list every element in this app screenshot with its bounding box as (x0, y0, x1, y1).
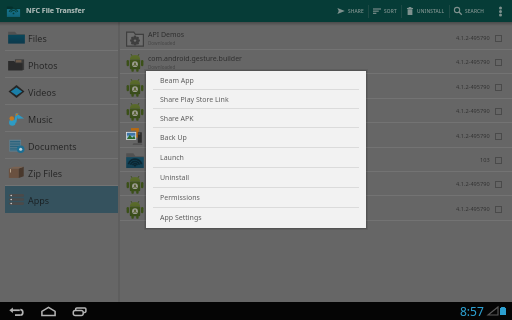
button[interactable]: Apps (5, 186, 118, 213)
staticText: Share Play Store Link (160, 95, 229, 105)
button[interactable]: Files (5, 24, 118, 51)
button[interactable]: Share Play Store Link (146, 90, 366, 109)
staticText: 4.1.2-495790 (456, 107, 490, 115)
staticText: Documents (28, 140, 77, 152)
staticText: SORT (384, 8, 397, 15)
button[interactable]: More options (494, 0, 506, 22)
staticText: Downloaded (148, 89, 176, 95)
staticText: Downloaded (148, 186, 176, 192)
button[interactable]: com.android.gesture.builder (120, 50, 512, 74)
staticText: Downloaded (148, 64, 176, 70)
staticText: 4.1.2-495790 (456, 132, 490, 140)
staticText: Zip Files (28, 167, 63, 179)
button[interactable]: App Settings (146, 208, 366, 228)
staticText: Downloaded (148, 113, 176, 119)
button[interactable]: Zip Files (5, 159, 118, 186)
staticText: 8:57 (460, 303, 484, 319)
staticText: Videos (28, 86, 57, 98)
button[interactable]: SORT (369, 0, 401, 22)
button[interactable]: Widget Preview (120, 197, 512, 221)
button[interactable]: Home (36, 302, 61, 320)
button[interactable]: Share APK (146, 109, 366, 128)
button[interactable]: SEARCH (450, 0, 489, 22)
button[interactable]: Permissions (146, 188, 366, 208)
staticText: API Demos (148, 30, 185, 40)
staticText: Downloaded (148, 162, 176, 168)
button[interactable]: Launch (146, 148, 366, 168)
staticText: 4.1.2-495790 (456, 180, 490, 188)
button[interactable]: Photos (5, 51, 118, 78)
staticText: Uninstall (160, 173, 189, 183)
staticText: SEARCH (465, 8, 485, 15)
staticText: Share APK (160, 114, 194, 124)
button[interactable]: UNINSTALL (402, 0, 449, 22)
button[interactable]: Videos (5, 78, 118, 105)
staticText: Beam App (160, 76, 194, 86)
staticText: 4.1.2-495790 (456, 205, 490, 213)
staticText: Permissions (160, 193, 200, 203)
staticText: Speech Recorder (148, 176, 204, 186)
staticText: App Settings (160, 213, 202, 223)
staticText: Downloaded (148, 40, 176, 46)
button[interactable]: Speech Recorder (120, 172, 512, 196)
button[interactable]: Back Up (146, 128, 366, 148)
staticText: com.android.gesture.builder (148, 54, 242, 64)
button[interactable]: NFC File Transfer (120, 148, 512, 172)
button[interactable]: Back (4, 302, 29, 320)
staticText: Gallery (148, 128, 172, 138)
staticText: 103 (480, 156, 490, 164)
staticText: Photos (28, 59, 58, 71)
staticText: Widget Preview (148, 201, 199, 211)
staticText: Downloaded (148, 138, 176, 144)
button[interactable]: SHARE (333, 0, 368, 22)
button[interactable]: Documents (5, 132, 118, 159)
staticText: NFC File Transfer (26, 6, 85, 16)
staticText: Downloaded (148, 211, 176, 217)
button[interactable]: Dev Tools (120, 99, 512, 123)
staticText: 4.1.2-495790 (456, 34, 490, 42)
button[interactable]: Beam App (146, 71, 366, 90)
button[interactable]: Uninstall (146, 168, 366, 188)
staticText: UNINSTALL (417, 8, 445, 15)
staticText: SHARE (348, 8, 364, 15)
staticText: Back Up (160, 133, 187, 143)
button[interactable]: Custom Locale (120, 75, 512, 99)
staticText: Files (28, 32, 47, 44)
staticText: 4.1.2-495790 (456, 58, 490, 66)
staticText: 4.1.2-495790 (456, 83, 490, 91)
staticText: NFC File Transfer (148, 152, 204, 162)
button[interactable]: API Demos (120, 26, 512, 50)
staticText: Dev Tools (148, 103, 180, 113)
button[interactable]: Gallery (120, 124, 512, 148)
staticText: Custom Locale (148, 79, 197, 89)
button[interactable]: Recent apps (68, 302, 93, 320)
staticText: Music (28, 113, 53, 125)
button[interactable]: Music (5, 105, 118, 132)
staticText: Apps (28, 194, 50, 206)
staticText: Launch (160, 153, 184, 163)
